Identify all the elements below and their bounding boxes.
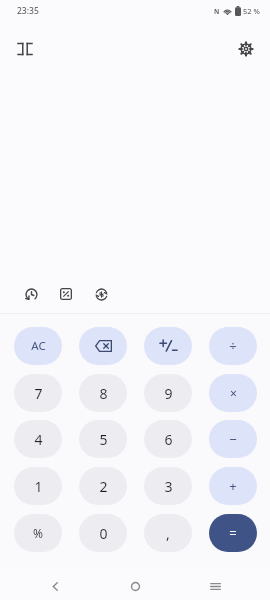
staticText: 52 %: [243, 6, 260, 16]
staticText: 0: [99, 524, 108, 543]
staticText: 7: [34, 384, 43, 403]
button[interactable]: +: [209, 467, 257, 505]
button[interactable]: Collapse: [11, 35, 39, 63]
button[interactable]: ,: [144, 514, 192, 552]
button[interactable]: Toggle sign: [144, 327, 192, 365]
staticText: 4: [34, 430, 43, 449]
button[interactable]: History: [18, 281, 44, 307]
button[interactable]: Currency converter: [88, 281, 114, 307]
staticText: AC: [31, 338, 46, 354]
button[interactable]: =: [209, 514, 257, 552]
staticText: ,: [166, 524, 170, 543]
button[interactable]: −: [209, 420, 257, 458]
staticText: %: [33, 525, 43, 541]
staticText: 6: [164, 430, 173, 449]
button[interactable]: 9: [144, 374, 192, 412]
button[interactable]: 5: [79, 420, 127, 458]
button[interactable]: %: [14, 514, 62, 552]
staticText: 8: [99, 384, 108, 403]
button[interactable]: 6: [144, 420, 192, 458]
button[interactable]: 8: [79, 374, 127, 412]
staticText: 5: [99, 430, 108, 449]
button[interactable]: Settings: [232, 35, 260, 63]
staticText: 1: [34, 477, 43, 496]
button[interactable]: Home: [121, 572, 149, 600]
button[interactable]: ÷: [209, 327, 257, 365]
button[interactable]: AC: [14, 327, 62, 365]
button[interactable]: 1: [14, 467, 62, 505]
button[interactable]: 3: [144, 467, 192, 505]
button[interactable]: 4: [14, 420, 62, 458]
staticText: −: [229, 430, 237, 448]
staticText: =: [229, 524, 237, 542]
button[interactable]: 2: [79, 467, 127, 505]
button[interactable]: Back: [41, 572, 69, 600]
staticText: 2: [99, 477, 108, 496]
button[interactable]: 7: [14, 374, 62, 412]
staticText: 3: [164, 477, 173, 496]
button[interactable]: 0: [79, 514, 127, 552]
staticText: +: [229, 477, 237, 495]
button[interactable]: ×: [209, 374, 257, 412]
staticText: N: [214, 7, 220, 16]
button[interactable]: Recent apps: [201, 572, 229, 600]
staticText: ×: [230, 385, 237, 401]
button[interactable]: Delete: [79, 327, 127, 365]
button[interactable]: Unit converter: [53, 281, 79, 307]
staticText: 9: [164, 384, 173, 403]
staticText: ÷: [229, 337, 237, 355]
staticText: 23:35: [17, 5, 39, 17]
